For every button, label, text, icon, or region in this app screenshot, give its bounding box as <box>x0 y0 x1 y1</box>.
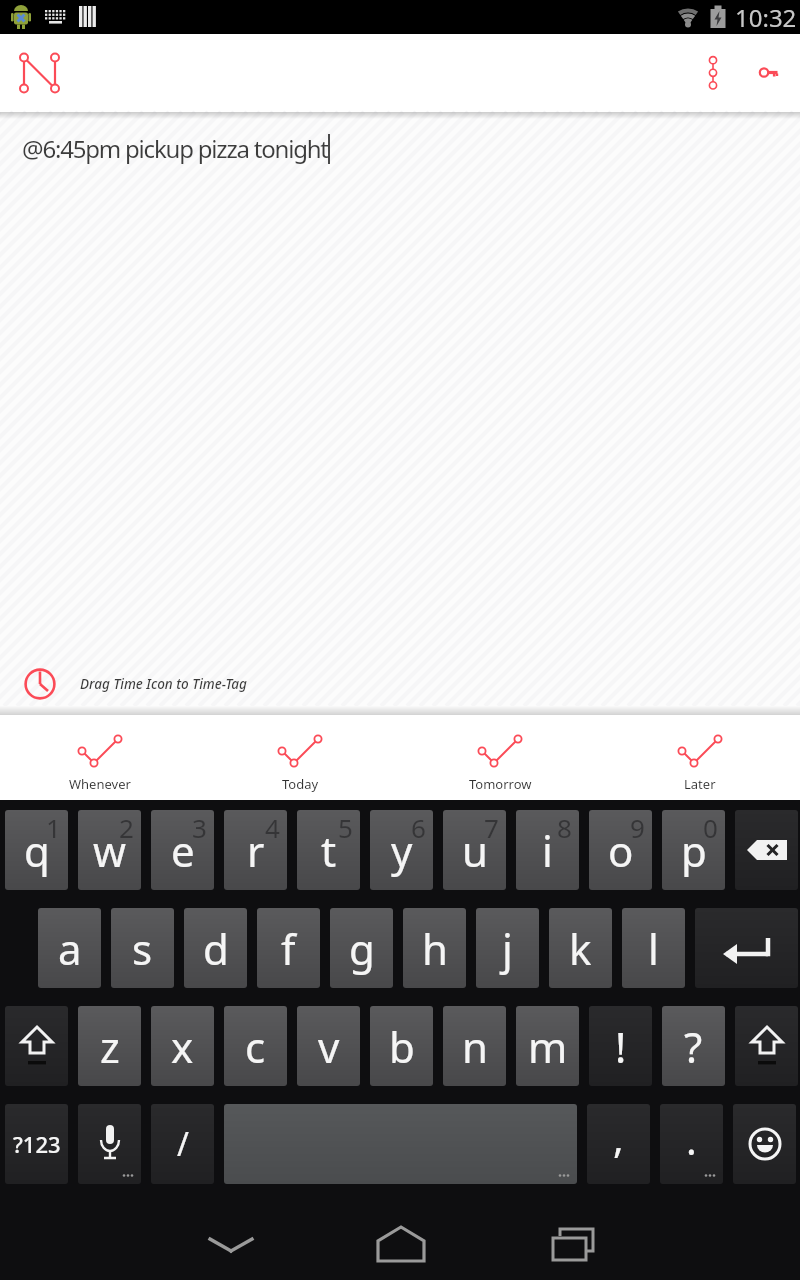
button[interactable]: . <box>660 1104 723 1184</box>
button[interactable]: , <box>587 1104 650 1184</box>
button[interactable] <box>533 1204 800 1280</box>
button[interactable]: q <box>5 810 68 890</box>
staticText: x <box>171 1018 194 1075</box>
button[interactable] <box>686 34 740 112</box>
staticText: Tomorrow <box>469 775 532 793</box>
button[interactable] <box>740 34 800 112</box>
staticText: / <box>177 1122 189 1166</box>
button[interactable]: v <box>297 1006 360 1086</box>
staticText: z <box>100 1018 120 1075</box>
staticText: 10:32 <box>735 1 797 34</box>
button[interactable]: f <box>257 908 320 988</box>
staticText: k <box>569 920 592 977</box>
staticText: 6 <box>411 810 426 845</box>
staticText: u <box>462 822 488 879</box>
button[interactable]: Whenever <box>0 715 200 800</box>
button[interactable]: p <box>662 810 725 890</box>
staticText: g <box>349 920 375 977</box>
button[interactable]: ! <box>589 1006 652 1086</box>
button[interactable]: c <box>224 1006 287 1086</box>
button[interactable]: y <box>370 810 433 890</box>
button[interactable] <box>78 1104 141 1184</box>
staticText: c <box>245 1018 266 1075</box>
button[interactable] <box>5 1006 68 1086</box>
staticText: v <box>318 1018 340 1075</box>
staticText: t <box>321 822 337 879</box>
staticText: , <box>613 1110 624 1164</box>
button[interactable]: z <box>78 1006 141 1086</box>
button[interactable]: n <box>443 1006 506 1086</box>
staticText: j <box>502 920 513 977</box>
staticText: i <box>542 822 553 879</box>
staticText: m <box>528 1018 568 1075</box>
staticText: Today <box>282 775 319 793</box>
staticText: ? <box>684 1018 703 1075</box>
staticText: y <box>391 822 413 879</box>
button[interactable]: Today <box>200 715 400 800</box>
staticText: h <box>422 920 448 977</box>
button[interactable] <box>224 1104 577 1184</box>
button[interactable]: x <box>151 1006 214 1086</box>
staticText: 3 <box>192 810 207 845</box>
staticText: a <box>58 920 82 977</box>
staticText: q <box>24 822 50 879</box>
staticText: p <box>681 822 707 879</box>
staticText: 7 <box>484 810 499 845</box>
button[interactable]: e <box>151 810 214 890</box>
button[interactable] <box>0 1204 266 1280</box>
button[interactable]: i <box>516 810 579 890</box>
button[interactable]: Tomorrow <box>400 715 600 800</box>
staticText: n <box>462 1018 488 1075</box>
staticText: ! <box>615 1018 627 1075</box>
staticText: 1 <box>46 810 61 845</box>
button[interactable]: ? <box>662 1006 725 1086</box>
staticText: @6:45pm pickup pizza tonight <box>22 132 328 165</box>
button[interactable]: b <box>370 1006 433 1086</box>
button[interactable]: / <box>151 1104 214 1184</box>
button[interactable]: Later <box>600 715 800 800</box>
button[interactable] <box>735 810 798 890</box>
staticText: 8 <box>557 810 572 845</box>
button[interactable]: d <box>184 908 247 988</box>
staticText: . <box>686 1112 697 1166</box>
button[interactable]: u <box>443 810 506 890</box>
staticText: l <box>648 920 659 977</box>
button[interactable]: s <box>111 908 174 988</box>
button[interactable]: w <box>78 810 141 890</box>
button[interactable]: ?123 <box>5 1104 68 1184</box>
button[interactable] <box>733 1104 796 1184</box>
button[interactable]: t <box>297 810 360 890</box>
staticText: w <box>93 822 127 879</box>
button[interactable]: g <box>330 908 393 988</box>
button[interactable] <box>735 1006 798 1086</box>
staticText: Later <box>684 775 716 793</box>
staticText: ?123 <box>13 1129 61 1159</box>
staticText: 2 <box>119 810 134 845</box>
button[interactable]: r <box>224 810 287 890</box>
button[interactable] <box>266 1204 533 1280</box>
staticText: b <box>389 1018 415 1075</box>
staticText: 5 <box>338 810 353 845</box>
staticText: e <box>171 822 195 879</box>
staticText: 0 <box>703 810 718 845</box>
staticText: 9 <box>630 810 645 845</box>
staticText: Drag Time Icon to Time-Tag <box>80 675 247 693</box>
button[interactable]: h <box>403 908 466 988</box>
staticText: d <box>203 920 229 977</box>
button[interactable]: o <box>589 810 652 890</box>
button[interactable]: j <box>476 908 539 988</box>
staticText: 4 <box>265 810 280 845</box>
button[interactable] <box>695 908 798 988</box>
staticText: Whenever <box>69 775 131 793</box>
button[interactable]: k <box>549 908 612 988</box>
button[interactable]: l <box>622 908 685 988</box>
staticText: f <box>281 920 296 977</box>
staticText: r <box>247 822 265 879</box>
button[interactable] <box>0 34 80 112</box>
staticText: s <box>132 920 153 977</box>
button[interactable]: a <box>38 908 101 988</box>
button[interactable]: m <box>516 1006 579 1086</box>
staticText: o <box>608 822 634 879</box>
